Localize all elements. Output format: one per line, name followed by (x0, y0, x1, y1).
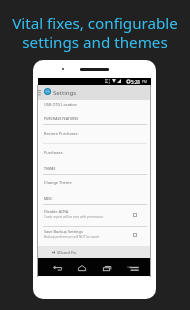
button[interactable] (38, 205, 151, 226)
button[interactable]: Navigate up (38, 90, 41, 95)
button[interactable]: SDcard Fix (38, 246, 151, 259)
button[interactable] (38, 227, 151, 246)
staticText: USB OTG Location (44, 102, 77, 107)
button[interactable] (38, 175, 151, 191)
staticText: PM (142, 80, 147, 84)
button[interactable] (38, 144, 151, 163)
button[interactable]: Back (52, 264, 64, 273)
staticText: Settings (53, 88, 77, 96)
staticText: PURCHASE FEATURES (44, 116, 79, 120)
staticText: Backup preferences will NOT be saved (44, 235, 100, 239)
staticText: SDcard Fix (57, 250, 77, 255)
button[interactable] (38, 100, 151, 113)
staticText: Vital fixes, configurable settings and t… (0, 13, 190, 52)
staticText: Save Backup Settings (44, 229, 83, 234)
staticText: Purchases (44, 150, 63, 155)
staticText: THEME (44, 166, 56, 170)
staticText: Disable ACRA (44, 209, 69, 214)
button[interactable]: Recent apps (101, 264, 113, 273)
button[interactable]: Menu (127, 264, 139, 273)
staticText: Crash report will be sent with permissio… (44, 215, 104, 219)
staticText: Change Theme (44, 180, 72, 185)
staticText: 5:28 (131, 79, 140, 85)
staticText: MISC (44, 196, 53, 200)
button[interactable]: Home (76, 264, 88, 273)
staticText: Restore Purchases (44, 131, 78, 136)
button[interactable] (38, 125, 151, 144)
